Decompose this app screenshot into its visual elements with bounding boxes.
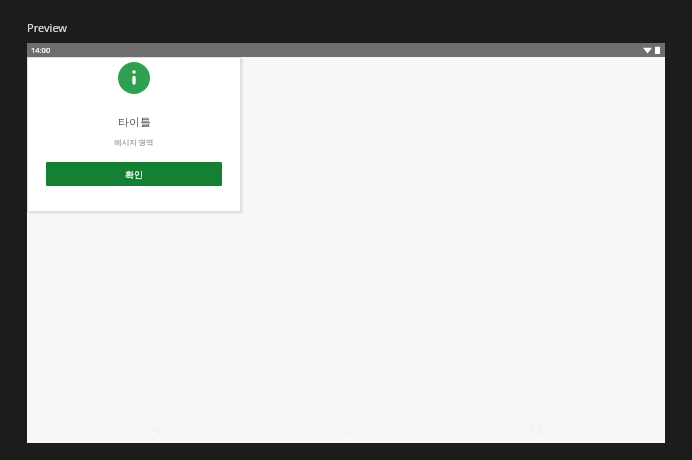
staticText: 확인 bbox=[125, 169, 143, 180]
button[interactable]: 확인 bbox=[46, 162, 222, 186]
staticText: Preview bbox=[27, 20, 68, 35]
staticText: 메시지 영역 bbox=[114, 137, 154, 147]
staticText: 14:00 bbox=[31, 45, 51, 55]
staticText: 타이틀 bbox=[118, 115, 151, 129]
